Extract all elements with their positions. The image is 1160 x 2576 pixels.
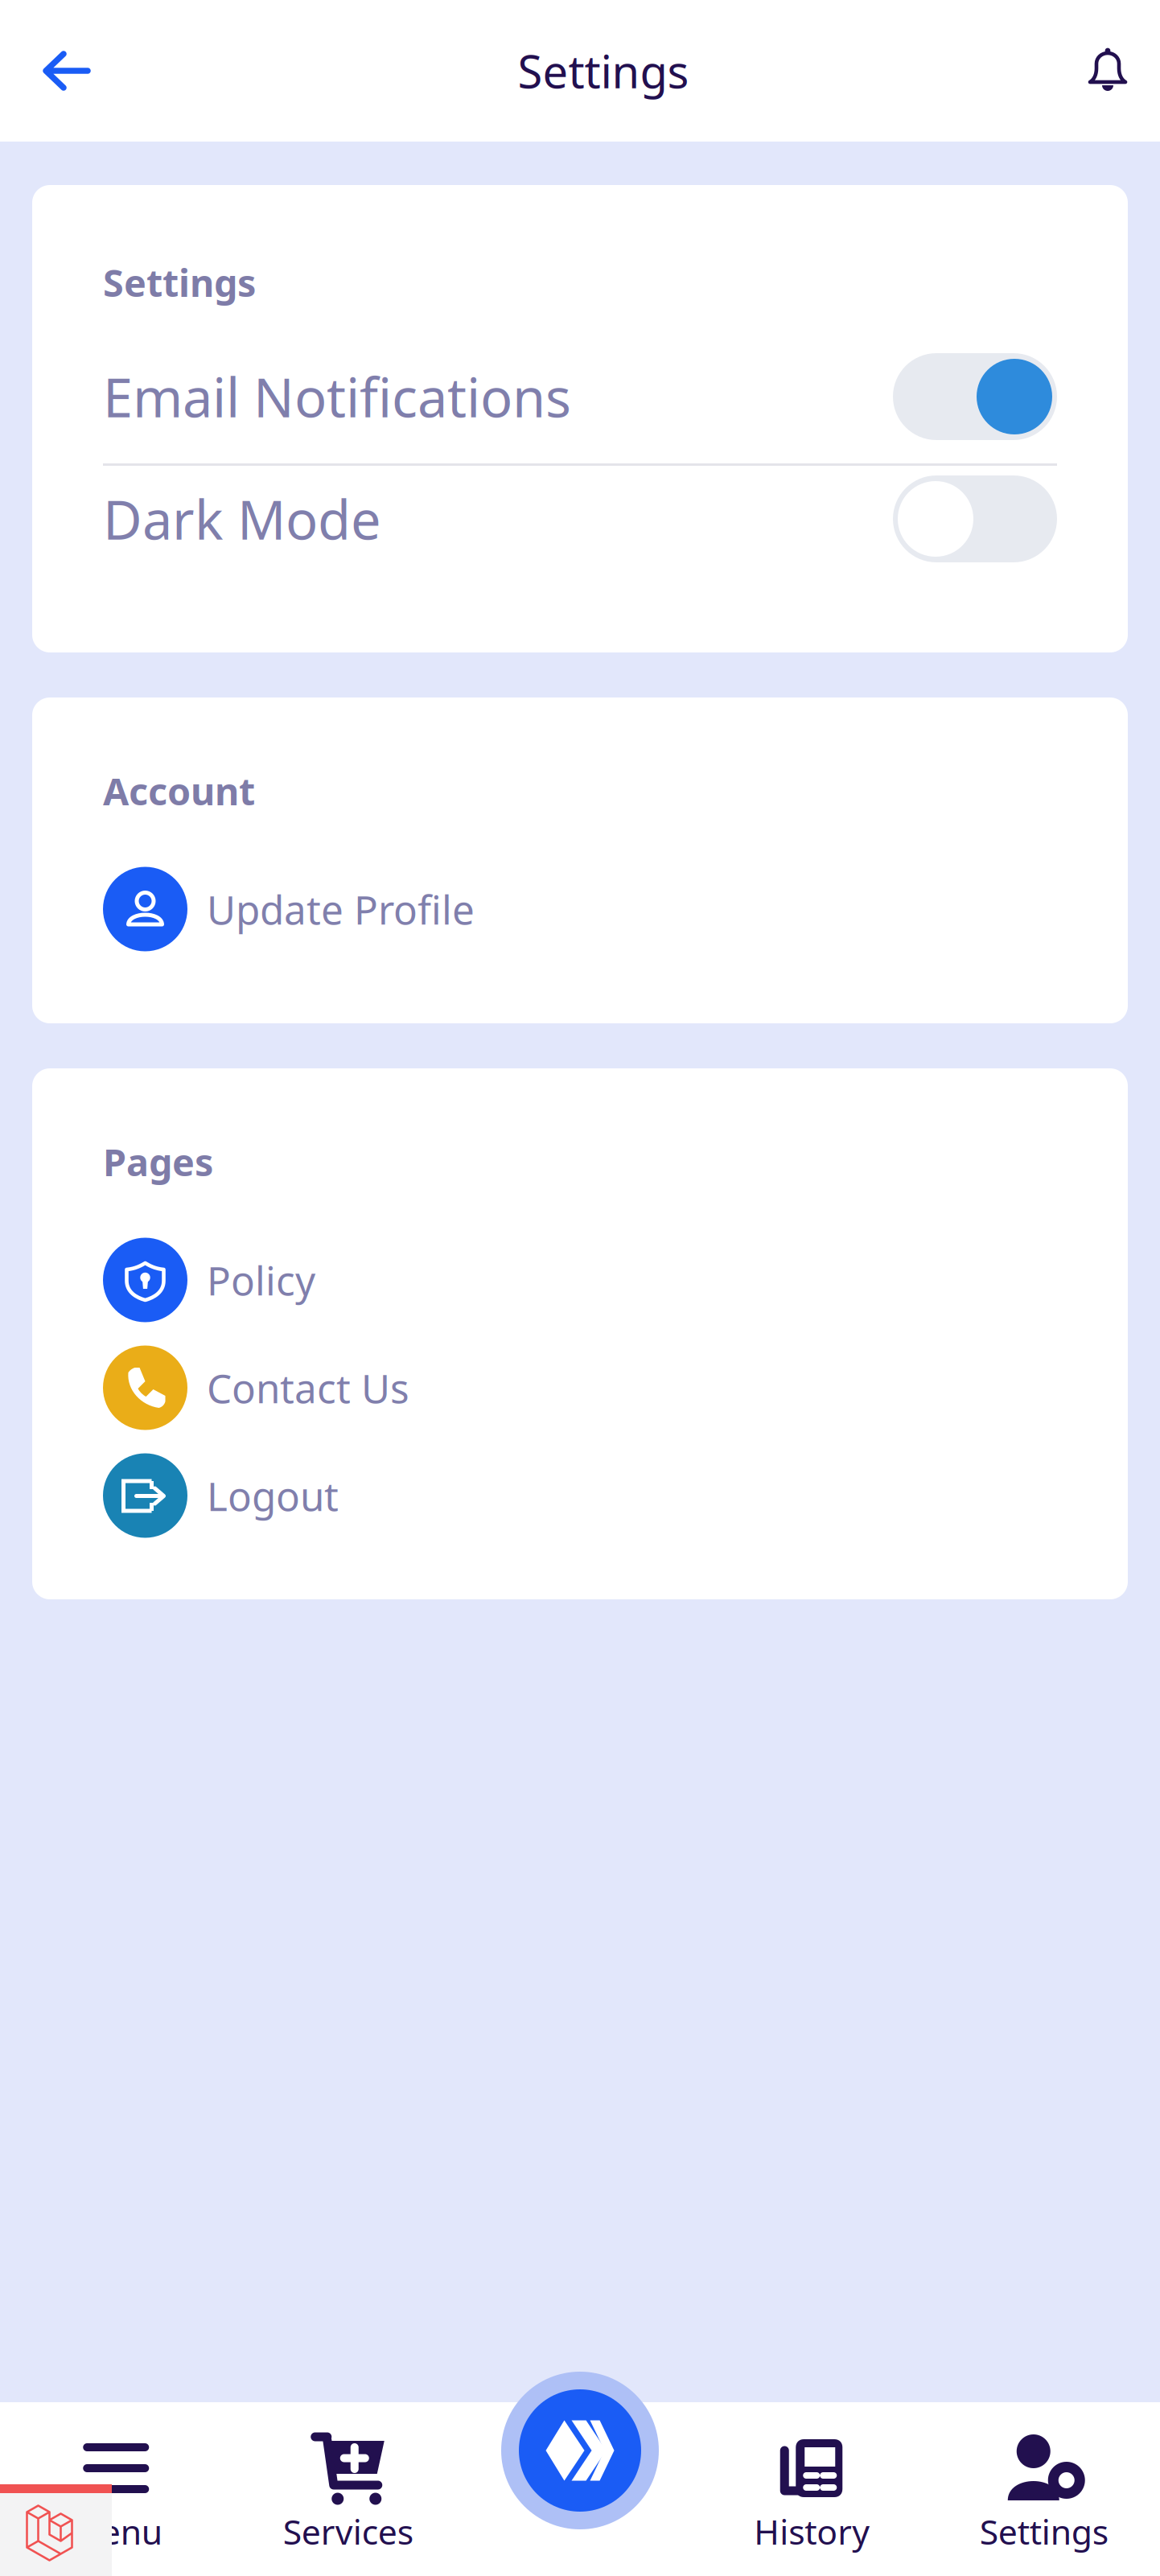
staticText: Settings	[103, 257, 256, 307]
button[interactable]: Email Notifications	[103, 344, 1057, 450]
button[interactable]: Policy	[103, 1226, 1057, 1334]
button[interactable]: Menu	[0, 2402, 232, 2576]
button[interactable]: Contact Us	[103, 1334, 1057, 1442]
staticText: Update Profile	[207, 883, 475, 935]
staticText: Contact Us	[207, 1361, 409, 1414]
button[interactable]: Dark Mode	[103, 466, 1057, 572]
staticText: Settings	[518, 41, 689, 101]
button[interactable]: History	[696, 2402, 928, 2576]
staticText: Menu	[70, 2508, 162, 2554]
staticText: Services	[283, 2508, 413, 2554]
button[interactable]: Settings	[928, 2402, 1160, 2576]
staticText: Pages	[103, 1137, 213, 1187]
staticText: Settings	[980, 2508, 1108, 2554]
staticText: Account	[103, 766, 255, 816]
button[interactable]: Notifications	[1072, 31, 1146, 110]
button[interactable]: Update Profile	[103, 855, 1057, 963]
button[interactable]: Back	[27, 34, 107, 108]
staticText: Policy	[207, 1254, 315, 1306]
staticText: Email Notifications	[103, 361, 571, 432]
staticText: History	[754, 2508, 870, 2554]
button[interactable]: Services	[232, 2402, 464, 2576]
staticText: Logout	[207, 1469, 339, 1522]
staticText: Dark Mode	[103, 483, 381, 554]
button[interactable]: Logout	[103, 1442, 1057, 1549]
button[interactable]: Quick action	[501, 2372, 659, 2529]
